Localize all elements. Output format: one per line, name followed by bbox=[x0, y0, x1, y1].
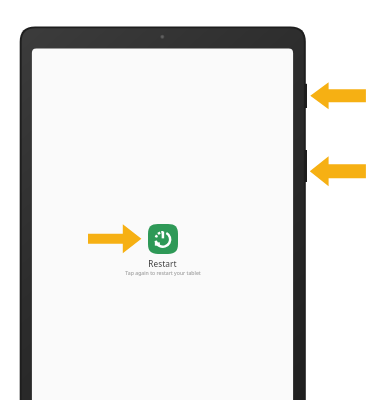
staticText: Restart bbox=[148, 258, 177, 269]
staticText: Tap again to restart your tablet bbox=[125, 269, 201, 276]
button[interactable]: Restart bbox=[97, 224, 228, 276]
